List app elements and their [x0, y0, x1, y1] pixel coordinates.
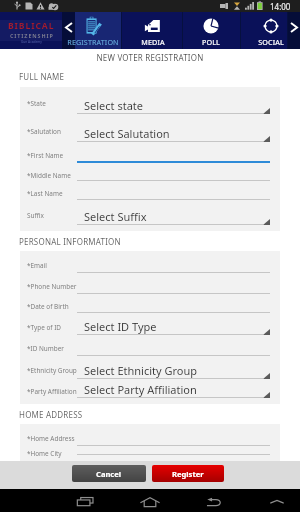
staticText: NEW VOTER REGISTRATION [0, 52, 300, 63]
staticText: Select Suffix [84, 209, 147, 224]
staticText: *Last Name [27, 189, 63, 198]
staticText: *ID Number [27, 344, 64, 353]
staticText: *Ethnicity Group [27, 366, 77, 375]
button[interactable] [240, 12, 287, 49]
button[interactable] [121, 12, 182, 49]
staticText: REGISTRATION [53, 37, 133, 46]
button[interactable]: *Phone Number [20, 276, 280, 297]
staticText: Select Ethnicity Group [84, 363, 198, 378]
button[interactable]: BIBLICAL [0, 12, 62, 49]
staticText: BIBLICAL [8, 20, 55, 32]
staticText: *Email [27, 261, 47, 270]
button[interactable]: *Home Address [20, 427, 280, 449]
staticText: *Home City [27, 449, 62, 458]
staticText: *First Name [27, 151, 64, 160]
staticText: PERSONAL INFORMATION [19, 236, 121, 247]
staticText: *Home Address [27, 434, 75, 443]
staticText: Select Salutation [84, 126, 170, 141]
staticText: Gun Academy [21, 40, 42, 44]
staticText: *State [27, 99, 46, 108]
button[interactable]: *Date of Birth [20, 297, 280, 316]
staticText: *Middle Name [27, 171, 71, 180]
button[interactable]: *Salutation [20, 117, 280, 145]
staticText: SOCIAL [231, 37, 300, 46]
button[interactable]: Suffix [20, 203, 280, 228]
button[interactable]: *Email [20, 254, 280, 276]
button[interactable]: *Middle Name [20, 166, 280, 184]
staticText: POLL [171, 37, 251, 46]
staticText: Cancel [96, 469, 122, 479]
staticText: *Salutation [27, 127, 61, 136]
button[interactable] [182, 12, 240, 49]
staticText: Select ID Type [84, 319, 157, 334]
staticText: 14:00 [270, 1, 291, 12]
staticText: Register [172, 469, 204, 479]
staticText: FULL NAME [19, 71, 65, 82]
button[interactable]: *First Name [20, 145, 280, 166]
button[interactable]: *Party Affiliation [20, 382, 280, 401]
button[interactable]: *State [20, 90, 280, 117]
button[interactable]: Register [152, 465, 224, 482]
staticText: Select state [84, 98, 143, 113]
button[interactable]: *Type of ID [20, 316, 280, 338]
staticText: HOME ADDRESS [19, 409, 83, 420]
button[interactable]: More options [257, 489, 297, 512]
button[interactable]: *Last Name [20, 184, 280, 203]
staticText: *Type of ID [27, 323, 61, 332]
button[interactable]: *Home City [20, 449, 280, 458]
button[interactable]: Home [130, 489, 170, 512]
staticText: MEDIA [113, 37, 193, 46]
button[interactable]: *Ethnicity Group [20, 359, 280, 382]
button[interactable]: Next tabs [287, 12, 300, 49]
staticText: Select Party Affiliation [84, 382, 197, 397]
staticText: CITIZENSHIP [10, 32, 54, 39]
button[interactable]: Back [194, 489, 234, 512]
button[interactable]: Cancel [72, 465, 146, 482]
button[interactable] [75, 12, 121, 49]
staticText: *Phone Number [27, 282, 77, 291]
button[interactable]: Recent apps [65, 489, 105, 512]
button[interactable]: Previous tabs [62, 12, 75, 49]
staticText: *Date of Birth [27, 302, 69, 311]
button[interactable]: *ID Number [20, 338, 280, 359]
staticText: Suffix [27, 211, 44, 220]
staticText: *Party Affiliation [27, 387, 77, 396]
